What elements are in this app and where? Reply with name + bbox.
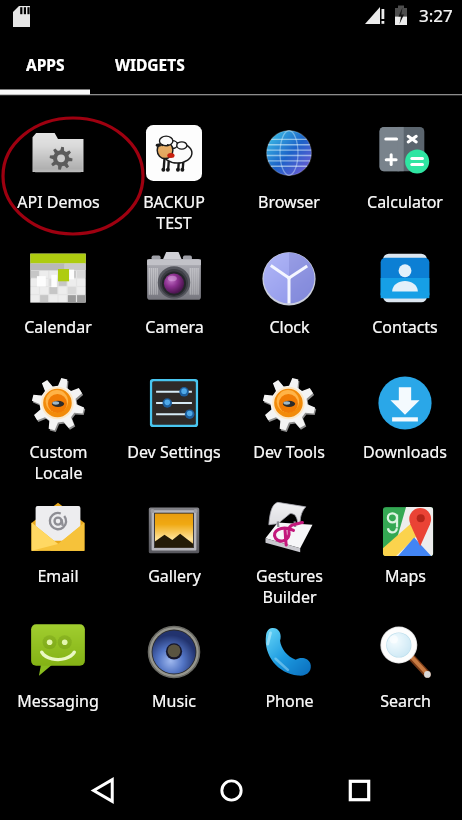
staticText: Gallery <box>148 565 201 587</box>
staticText: Camera <box>145 316 204 338</box>
staticText: WIDGETS <box>115 54 185 75</box>
button[interactable]: Calculator <box>347 96 462 221</box>
staticText: Dev Settings <box>127 441 221 463</box>
button[interactable]: Maps <box>347 470 462 595</box>
staticText: Calendar <box>24 316 92 338</box>
staticText: Browser <box>258 191 320 213</box>
staticText: Email <box>37 565 79 587</box>
button[interactable]: Home <box>204 763 258 817</box>
button[interactable]: Email <box>0 470 116 595</box>
button[interactable]: Custom Locale <box>0 346 116 471</box>
button[interactable]: Clock <box>231 221 347 346</box>
button[interactable]: Music <box>116 595 232 720</box>
staticText: Clock <box>269 316 310 338</box>
staticText: Phone <box>265 690 314 712</box>
button[interactable]: Gallery <box>116 470 232 595</box>
button[interactable]: Calendar <box>0 221 116 346</box>
staticText: Contacts <box>372 316 438 338</box>
staticText: Messaging <box>17 690 99 712</box>
button[interactable]: Gestures Builder <box>231 470 347 595</box>
staticText: Gestures Builder <box>256 565 323 608</box>
button[interactable]: Dev Tools <box>231 346 347 471</box>
button[interactable]: Messaging <box>0 595 116 720</box>
button[interactable]: Contacts <box>347 221 462 346</box>
staticText: 3:27 <box>419 4 453 27</box>
staticText: Maps <box>385 565 426 587</box>
staticText: Music <box>152 690 196 712</box>
button[interactable]: BACKUP TEST <box>116 96 232 221</box>
staticText: Downloads <box>363 441 447 463</box>
button[interactable]: API Demos <box>0 96 116 221</box>
button[interactable]: Phone <box>231 595 347 720</box>
button[interactable]: Recents <box>332 763 386 817</box>
staticText: BACKUP TEST <box>143 191 205 234</box>
button[interactable]: Downloads <box>347 346 462 471</box>
staticText: Search <box>380 690 431 712</box>
staticText: Calculator <box>367 191 443 213</box>
button[interactable]: Dev Settings <box>116 346 232 471</box>
button[interactable]: Back <box>76 763 130 817</box>
staticText: API Demos <box>17 191 100 213</box>
staticText: Custom Locale <box>29 441 88 484</box>
staticText: Dev Tools <box>253 441 325 463</box>
button[interactable]: Browser <box>231 96 347 221</box>
button[interactable]: APPS <box>0 36 90 93</box>
staticText: APPS <box>26 54 65 75</box>
button[interactable]: Camera <box>116 221 232 346</box>
button[interactable]: WIDGETS <box>90 36 210 93</box>
button[interactable]: Search <box>347 595 462 720</box>
